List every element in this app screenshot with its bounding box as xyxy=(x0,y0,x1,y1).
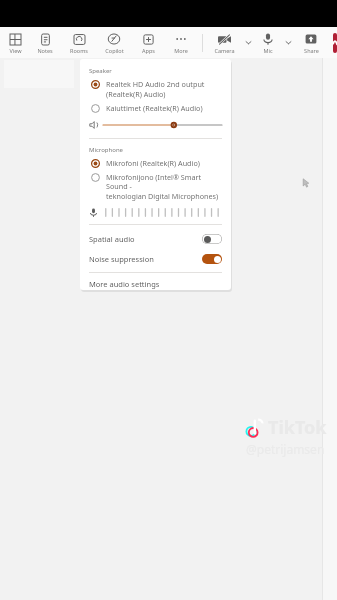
staticText: Notes xyxy=(37,47,53,54)
staticText: Mikrofonijono (Intel® Smart Sound - xyxy=(106,172,222,191)
button[interactable]: Mikrofoni (Realtek(R) Audio) xyxy=(89,158,222,168)
button[interactable]: Noise suppression xyxy=(89,249,222,269)
button[interactable]: Mic xyxy=(255,27,281,58)
staticText: Apps xyxy=(142,47,155,54)
button[interactable]: Leave xyxy=(333,33,337,53)
button[interactable]: More xyxy=(164,27,198,58)
staticText: Realtek HD Audio 2nd output xyxy=(106,79,205,89)
button[interactable]: View xyxy=(2,27,28,58)
staticText: Mikrofoni (Realtek(R) Audio) xyxy=(106,158,200,168)
staticText: Copilot xyxy=(105,47,124,54)
staticText: Microphone xyxy=(89,146,123,154)
staticText: View xyxy=(9,47,22,54)
staticText: Kaiuttimet (Realtek(R) Audio) xyxy=(106,103,203,113)
button[interactable]: Realtek HD Audio 2nd output xyxy=(89,79,222,99)
staticText: Camera xyxy=(214,47,235,54)
button[interactable]: Copilot xyxy=(96,27,132,58)
staticText: @petrijamsen xyxy=(246,441,325,457)
staticText: (Realtek(R) Audio) xyxy=(106,89,166,99)
staticText: More audio settings xyxy=(89,279,160,289)
staticText: TikTok xyxy=(268,415,327,440)
button[interactable]: Spatial audio xyxy=(89,229,222,249)
staticText: Noise suppression xyxy=(89,254,154,264)
button[interactable]: Mic options xyxy=(281,27,295,58)
button[interactable]: Share xyxy=(295,27,327,58)
staticText: More xyxy=(174,47,188,54)
button[interactable]: More audio settings xyxy=(89,278,222,290)
button[interactable]: Kaiuttimet (Realtek(R) Audio) xyxy=(89,103,222,113)
staticText: Share xyxy=(304,47,319,54)
staticText: teknologian Digital Microphones) xyxy=(106,191,219,201)
staticText: Rooms xyxy=(70,47,88,54)
button[interactable]: Rooms xyxy=(62,27,96,58)
button[interactable]: Mikrofonijono (Intel® Smart Sound - xyxy=(89,172,222,201)
button[interactable]: Camera options xyxy=(241,27,255,58)
staticText: Mic xyxy=(263,47,273,54)
button[interactable]: Notes xyxy=(28,27,62,58)
staticText: Spatial audio xyxy=(89,234,135,244)
button[interactable]: Apps xyxy=(132,27,164,58)
staticText: Speaker xyxy=(89,67,112,75)
button[interactable]: Volume xyxy=(89,119,222,131)
button[interactable]: Camera xyxy=(207,27,241,58)
